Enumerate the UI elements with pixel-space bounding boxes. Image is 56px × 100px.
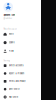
staticText: Files or Instagram: [3, 28, 17, 30]
button[interactable]: Open Source: [0, 85, 41, 93]
staticText: Settings: [3, 60, 10, 62]
button[interactable]: Profile: [0, 47, 41, 55]
staticText: @apkdeer: [3, 17, 12, 19]
button[interactable]: Explore: [0, 38, 41, 47]
button[interactable]: Help Center: [0, 93, 41, 100]
staticText: Open Source: [8, 88, 19, 90]
button[interactable]: Home: [0, 30, 41, 38]
button[interactable]: Switch accounts: [0, 62, 41, 69]
staticText: Explore: [8, 41, 14, 44]
staticText: Home: [8, 33, 13, 35]
button[interactable]: Terms and Privacy: [0, 77, 41, 85]
staticText: Report a Problem: [8, 72, 24, 75]
staticText: apkdeer.com: [3, 14, 15, 16]
staticText: Help Center: [8, 96, 18, 98]
staticText: Terms and Privacy: [8, 80, 25, 82]
button[interactable]: Report a Problem: [0, 69, 41, 77]
staticText: Profile: [8, 50, 13, 52]
staticText: Switch accounts: [8, 64, 23, 67]
